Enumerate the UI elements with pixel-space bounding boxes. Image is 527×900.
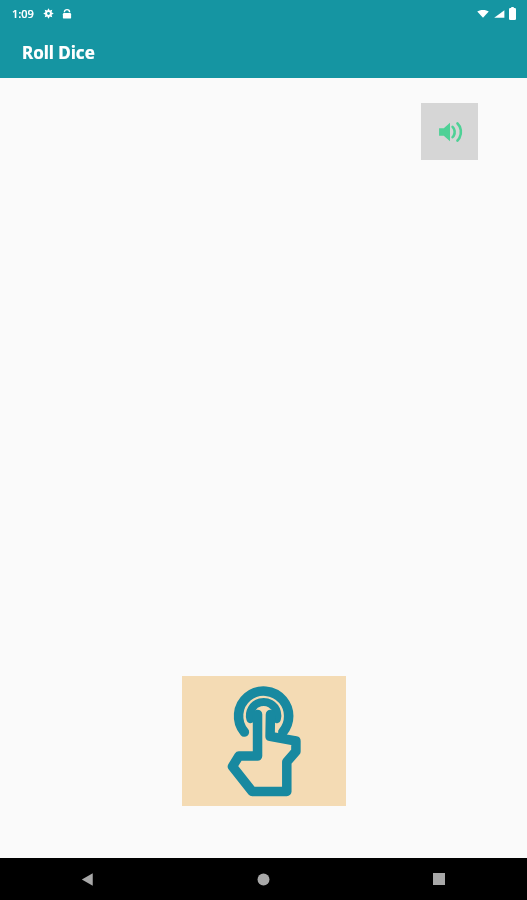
staticText: 1:09 <box>12 6 34 21</box>
staticText: Roll Dice <box>22 41 95 64</box>
button[interactable]: Back <box>0 858 175 900</box>
button[interactable]: Recent apps <box>351 858 527 900</box>
button[interactable]: Toggle sound <box>421 103 478 160</box>
button[interactable]: Home <box>175 858 351 900</box>
button[interactable]: Roll the dice <box>182 676 346 806</box>
